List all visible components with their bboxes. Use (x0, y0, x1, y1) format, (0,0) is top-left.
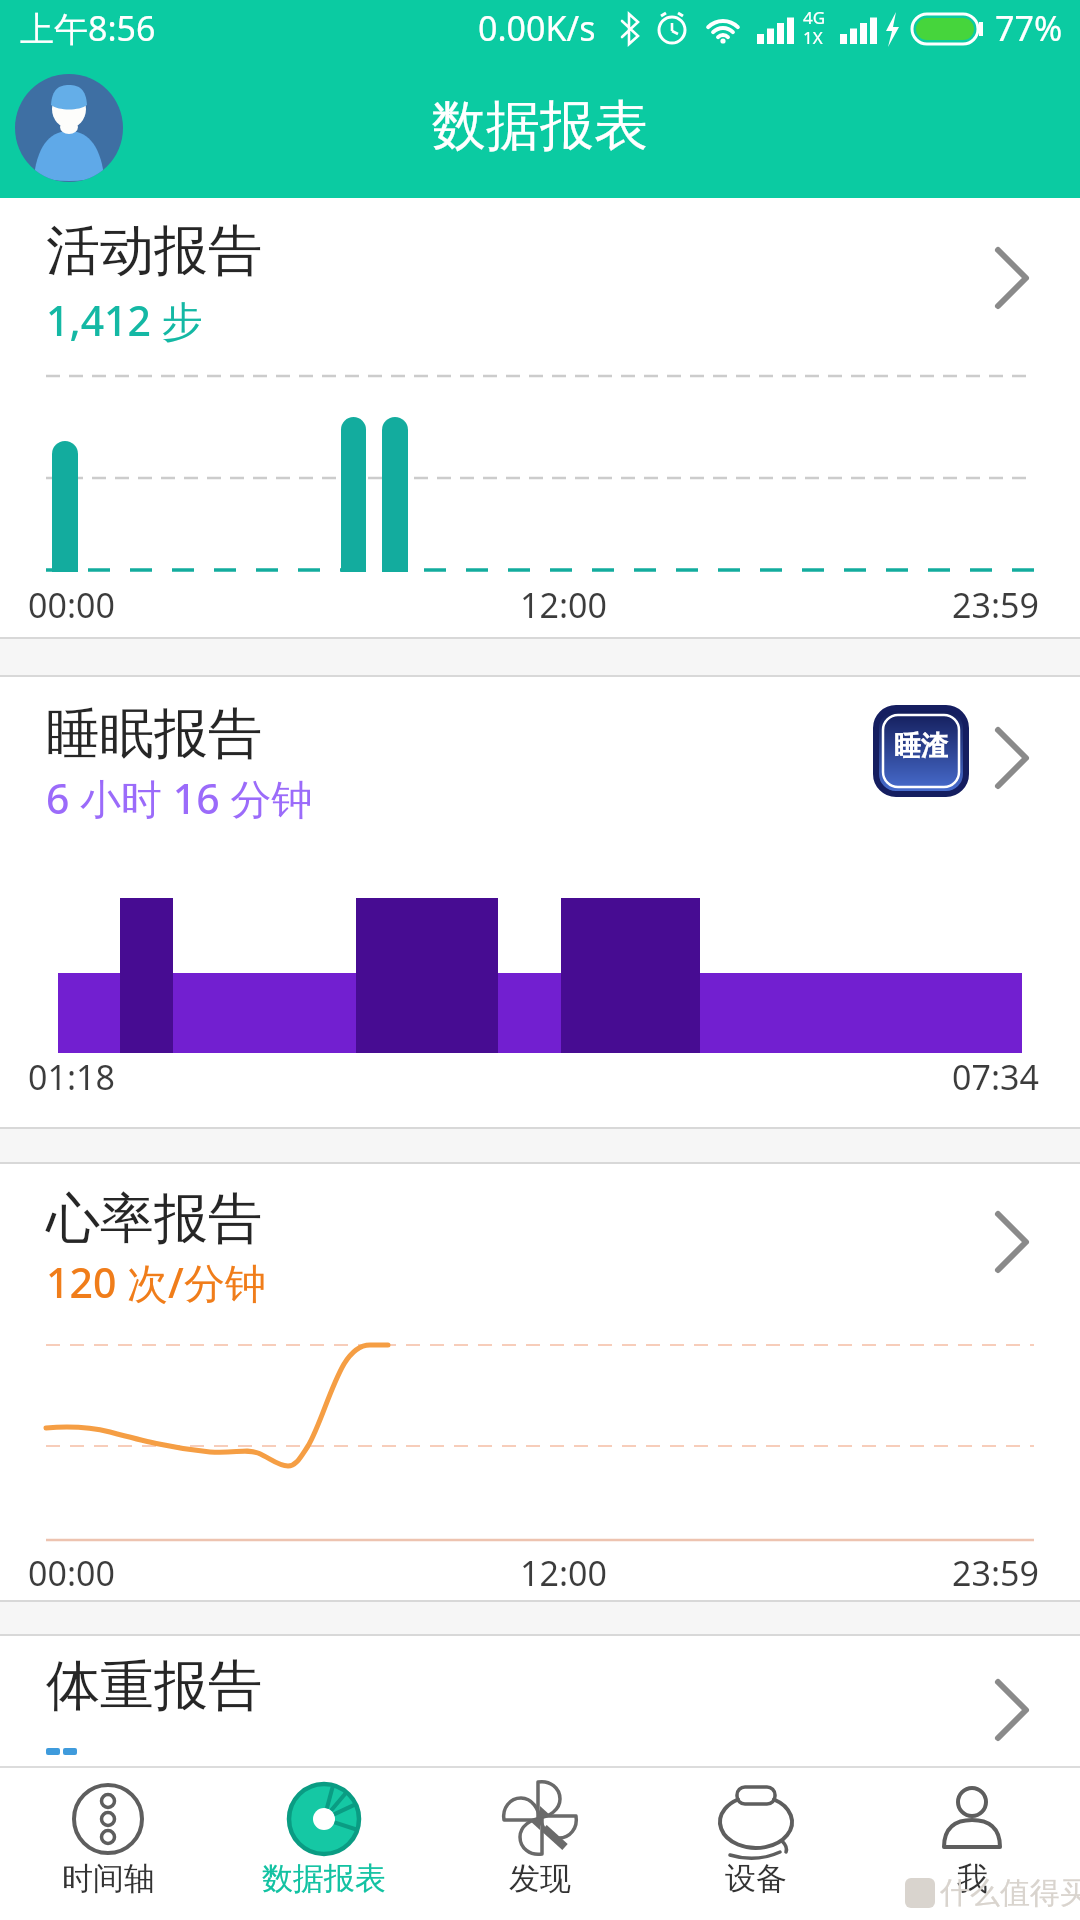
staticText: 时间轴 (62, 1859, 155, 1898)
staticText: 设备 (725, 1859, 787, 1898)
button[interactable]: 睡眠报告 (0, 677, 1080, 1127)
staticText: 数据报表 (262, 1859, 386, 1898)
staticText: 00:00 (28, 582, 115, 628)
staticText: 12:00 (520, 582, 607, 628)
button[interactable]: 数据报表 (216, 1766, 432, 1920)
button[interactable]: 时间轴 (0, 1766, 216, 1920)
staticText: 77% (995, 5, 1063, 51)
staticText: 1X (803, 26, 823, 49)
button[interactable]: 活动报告 (0, 198, 1080, 637)
staticText: 体重报告 (46, 1652, 262, 1720)
staticText: 6 小时 16 分钟 (46, 770, 313, 826)
staticText: 07:34 (952, 1054, 1039, 1100)
staticText: 什么值得买 (940, 1874, 1080, 1912)
staticText: 12:00 (520, 1550, 607, 1596)
staticText: 发现 (509, 1859, 571, 1898)
staticText: 23:59 (952, 1550, 1039, 1596)
button[interactable] (12, 71, 126, 185)
staticText: 心率报告 (46, 1185, 262, 1253)
button[interactable]: 体重报告 (0, 1636, 1080, 1766)
staticText: 睡渣 (894, 729, 948, 763)
button[interactable]: 我 (864, 1766, 1080, 1920)
staticText: 1,412 步 (46, 292, 203, 348)
staticText: 120 次/分钟 (46, 1254, 266, 1310)
staticText: 数据报表 (432, 92, 648, 160)
button[interactable]: 心率报告 (0, 1164, 1080, 1600)
staticText: 活动报告 (46, 217, 262, 285)
staticText: 上午8:56 (20, 5, 156, 51)
staticText: 睡眠报告 (46, 700, 262, 768)
staticText: 23:59 (952, 582, 1039, 628)
staticText: 我 (957, 1859, 988, 1898)
staticText: 4G (803, 6, 826, 29)
staticText: 00:00 (28, 1550, 115, 1596)
staticText: 0.00K/s (478, 5, 596, 51)
staticText: 01:18 (28, 1054, 115, 1100)
button[interactable]: 设备 (648, 1766, 864, 1920)
button[interactable]: 发现 (432, 1766, 648, 1920)
